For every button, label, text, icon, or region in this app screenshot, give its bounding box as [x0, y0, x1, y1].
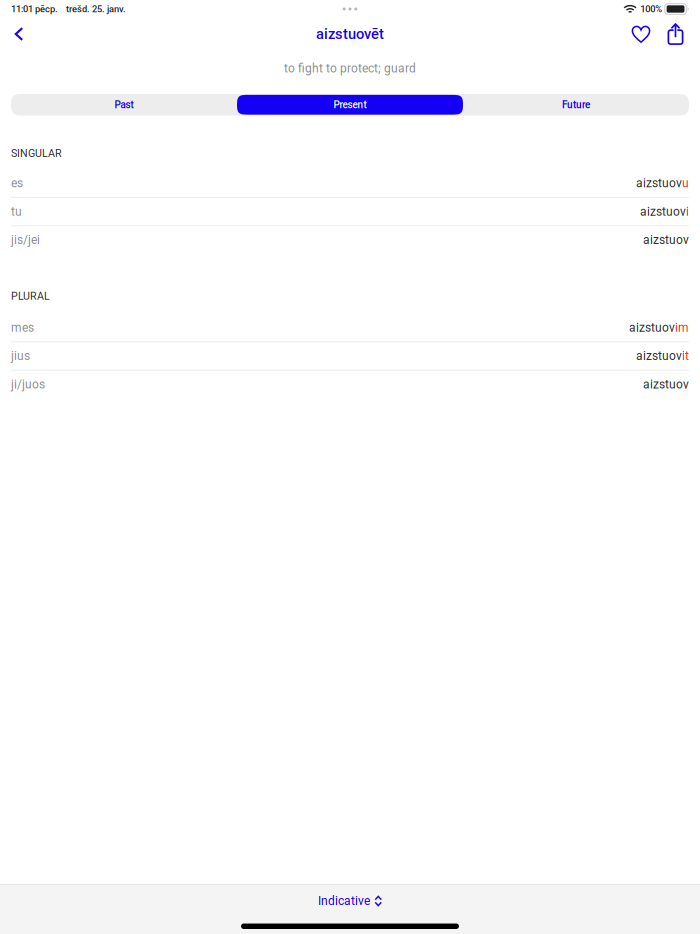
- staticText: jius: [11, 349, 30, 363]
- button[interactable]: tu: [0, 198, 700, 225]
- staticText: aizstuov: [640, 205, 686, 219]
- button[interactable]: jis/jei: [0, 226, 700, 254]
- button[interactable]: Back: [4, 18, 34, 50]
- button[interactable]: jius: [0, 342, 700, 370]
- staticText: it: [682, 349, 689, 363]
- staticText: aizstuovēt: [316, 25, 384, 43]
- button[interactable]: ji/juos: [0, 371, 700, 398]
- button[interactable]: Indicative: [0, 885, 700, 917]
- button[interactable]: Add to favourites: [622, 18, 659, 50]
- button[interactable]: Past: [11, 94, 237, 115]
- staticText: es: [11, 176, 23, 190]
- staticText: PLURAL: [11, 290, 50, 302]
- staticText: aizstuov: [629, 321, 675, 335]
- staticText: Indicative: [318, 894, 370, 908]
- staticText: i: [686, 205, 689, 219]
- staticText: jis/jei: [11, 233, 40, 247]
- staticText: tu: [11, 205, 22, 219]
- staticText: im: [675, 321, 689, 335]
- staticText: Past: [114, 99, 133, 111]
- button[interactable]: Share: [659, 18, 691, 50]
- staticText: aizstuov: [636, 349, 682, 363]
- staticText: mes: [11, 321, 34, 335]
- staticText: Future: [562, 99, 590, 111]
- staticText: u: [682, 176, 689, 190]
- button[interactable]: Future: [463, 94, 689, 115]
- staticText: aizstuov: [643, 233, 689, 247]
- staticText: aizstuov: [636, 176, 682, 190]
- staticText: 100%: [640, 3, 662, 14]
- staticText: SINGULAR: [11, 147, 62, 159]
- staticText: ji/juos: [11, 377, 45, 391]
- staticText: trešd. 25. janv.: [66, 3, 126, 14]
- button[interactable]: es: [0, 169, 700, 197]
- staticText: 11:01 pēcp.: [11, 3, 58, 14]
- button[interactable]: Present: [237, 94, 463, 115]
- staticText: to fight to protect; guard: [284, 61, 416, 76]
- staticText: aizstuov: [643, 377, 689, 391]
- staticText: Present: [333, 99, 366, 111]
- button[interactable]: mes: [0, 314, 700, 341]
